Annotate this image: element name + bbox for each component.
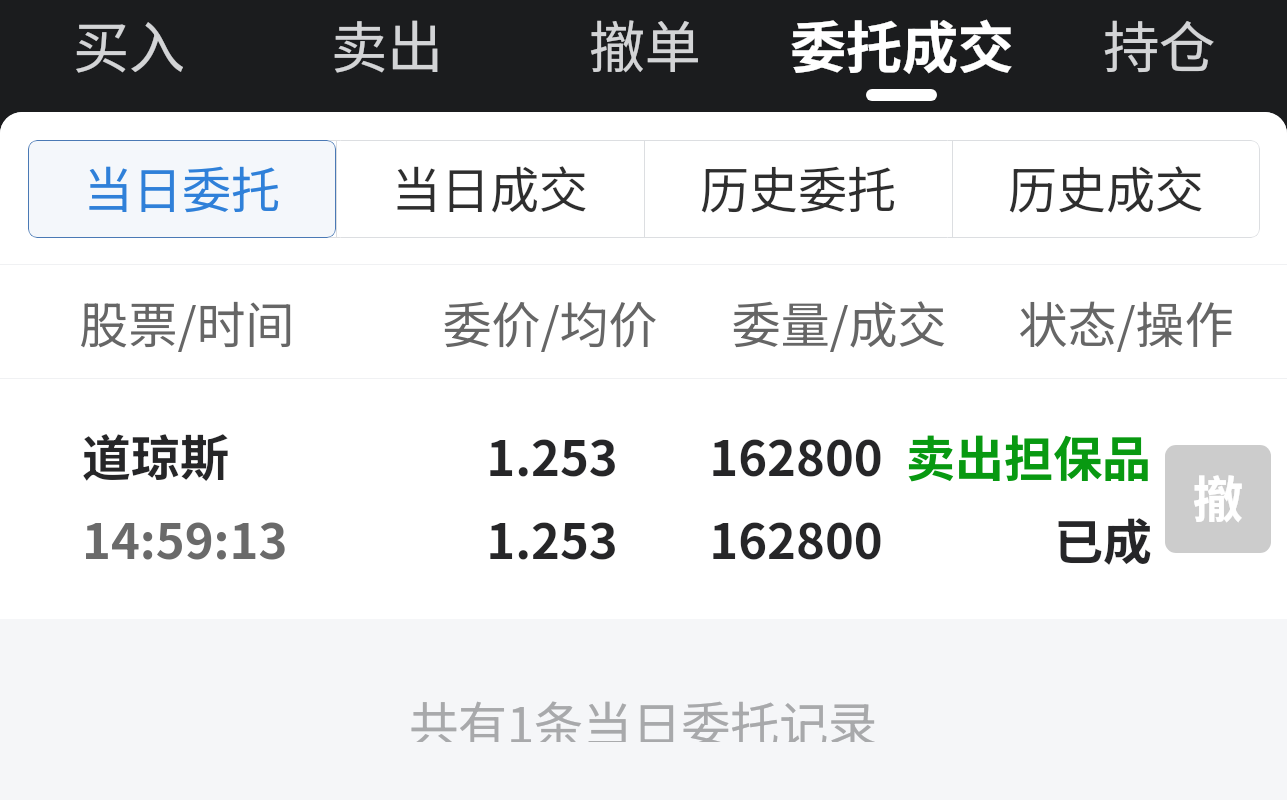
staticText: 162800 — [546, 419, 1046, 490]
staticText: 162800 — [546, 502, 1046, 573]
button[interactable]: 撤单 — [516, 0, 773, 112]
staticText: 1.253 — [302, 419, 802, 490]
staticText: 当日成交 — [392, 151, 589, 222]
button[interactable]: 历史成交 — [953, 140, 1260, 238]
button[interactable]: 撤单 — [1165, 445, 1271, 553]
button[interactable]: 历史委托 — [645, 140, 952, 238]
staticText: 状态/操作 — [876, 286, 1287, 357]
staticText: 当日委托 — [84, 151, 281, 222]
staticText: 卖出 — [331, 3, 443, 83]
staticText: 委价/均价 — [300, 286, 800, 357]
staticText: 14:59:13 — [82, 502, 288, 573]
button[interactable]: 持仓 — [1030, 0, 1287, 112]
button[interactable]: 买入 — [0, 0, 258, 112]
staticText: 委托成交 — [790, 3, 1014, 83]
staticText: 当日委托 — [84, 151, 281, 222]
staticText: 历史委托 — [700, 151, 897, 222]
staticText: 已成 — [652, 503, 1152, 574]
staticText: 1.253 — [302, 502, 802, 573]
button[interactable]: 当日委托 — [28, 140, 336, 238]
button[interactable]: 当日成交 — [337, 140, 644, 238]
staticText: 买入 — [73, 3, 185, 83]
staticText: 道琼斯 — [82, 419, 230, 490]
staticText: 共有1条当日委托记录 — [409, 686, 878, 742]
staticText: 撤 — [1193, 460, 1243, 532]
staticText: 历史成交 — [1008, 151, 1205, 222]
staticText: 委量/成交 — [589, 286, 1089, 357]
staticText: 股票/时间 — [0, 286, 437, 357]
button[interactable]: 当日委托 — [28, 140, 336, 238]
staticText: 撤单 — [589, 3, 701, 83]
staticText: 卖出担保品 — [651, 420, 1151, 491]
button[interactable]: 道琼斯 — [0, 379, 1287, 619]
button[interactable]: 委托成交 — [773, 0, 1030, 112]
staticText: 持仓 — [1103, 3, 1215, 83]
button[interactable]: 卖出 — [258, 0, 516, 112]
